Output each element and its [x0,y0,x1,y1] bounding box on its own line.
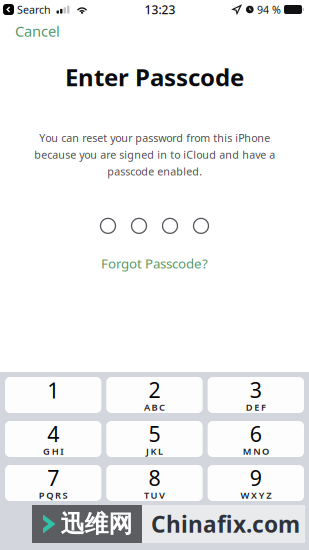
button[interactable]: 4 [5,421,101,457]
staticText: Chinafix.com [151,509,300,539]
staticText: Forgot Passcode? [101,254,208,272]
staticText: TUV [144,489,165,501]
staticText: Enter Passcode [65,61,244,93]
button[interactable]: 9 [208,465,304,501]
staticText: JKL [146,445,163,457]
staticText: Cancel [15,21,60,41]
button[interactable]: 2 [106,377,203,413]
staticText: 2 [148,376,160,404]
staticText: 1 [47,376,59,404]
button[interactable]: 7 [5,465,101,501]
staticText: 6 [250,420,262,448]
staticText: 迅维网 [60,509,132,539]
staticText: 94 % [257,2,281,17]
staticText: 7 [47,464,59,492]
staticText: You can reset your password from this iP… [34,131,275,178]
button[interactable]: Cancel [0,16,75,46]
button[interactable]: 6 [208,421,304,457]
staticText: DEF [246,401,266,413]
staticText: 8 [148,464,160,492]
button[interactable]: Forgot Passcode? [91,249,218,277]
staticText: 5 [148,420,160,448]
button[interactable]: 5 [106,421,203,457]
staticText: Search [17,2,51,17]
staticText: 4 [47,420,59,448]
staticText: GHI [43,445,63,457]
button[interactable]: 1 [5,377,101,413]
staticText: PQRS [39,489,68,501]
staticText: 9 [250,464,262,492]
staticText: WXYZ [240,489,271,501]
staticText: 13:23 [145,1,176,17]
button[interactable]: 3 [208,377,304,413]
button[interactable]: 8 [106,465,203,501]
staticText: ABC [144,401,165,413]
staticText: MNO [243,445,269,457]
staticText: 3 [250,376,262,404]
